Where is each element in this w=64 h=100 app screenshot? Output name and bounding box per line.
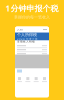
staticText: 掌握你的每一笔收入 (14, 15, 50, 19)
staticText: 2024 年度汇算 (17, 37, 38, 41)
staticText: 个人所得税 (17, 32, 37, 37)
staticText: 本期收入明细 (17, 40, 35, 43)
staticText: 9:41 (17, 28, 24, 31)
staticText: 1分钟申报个税 (5, 3, 58, 14)
